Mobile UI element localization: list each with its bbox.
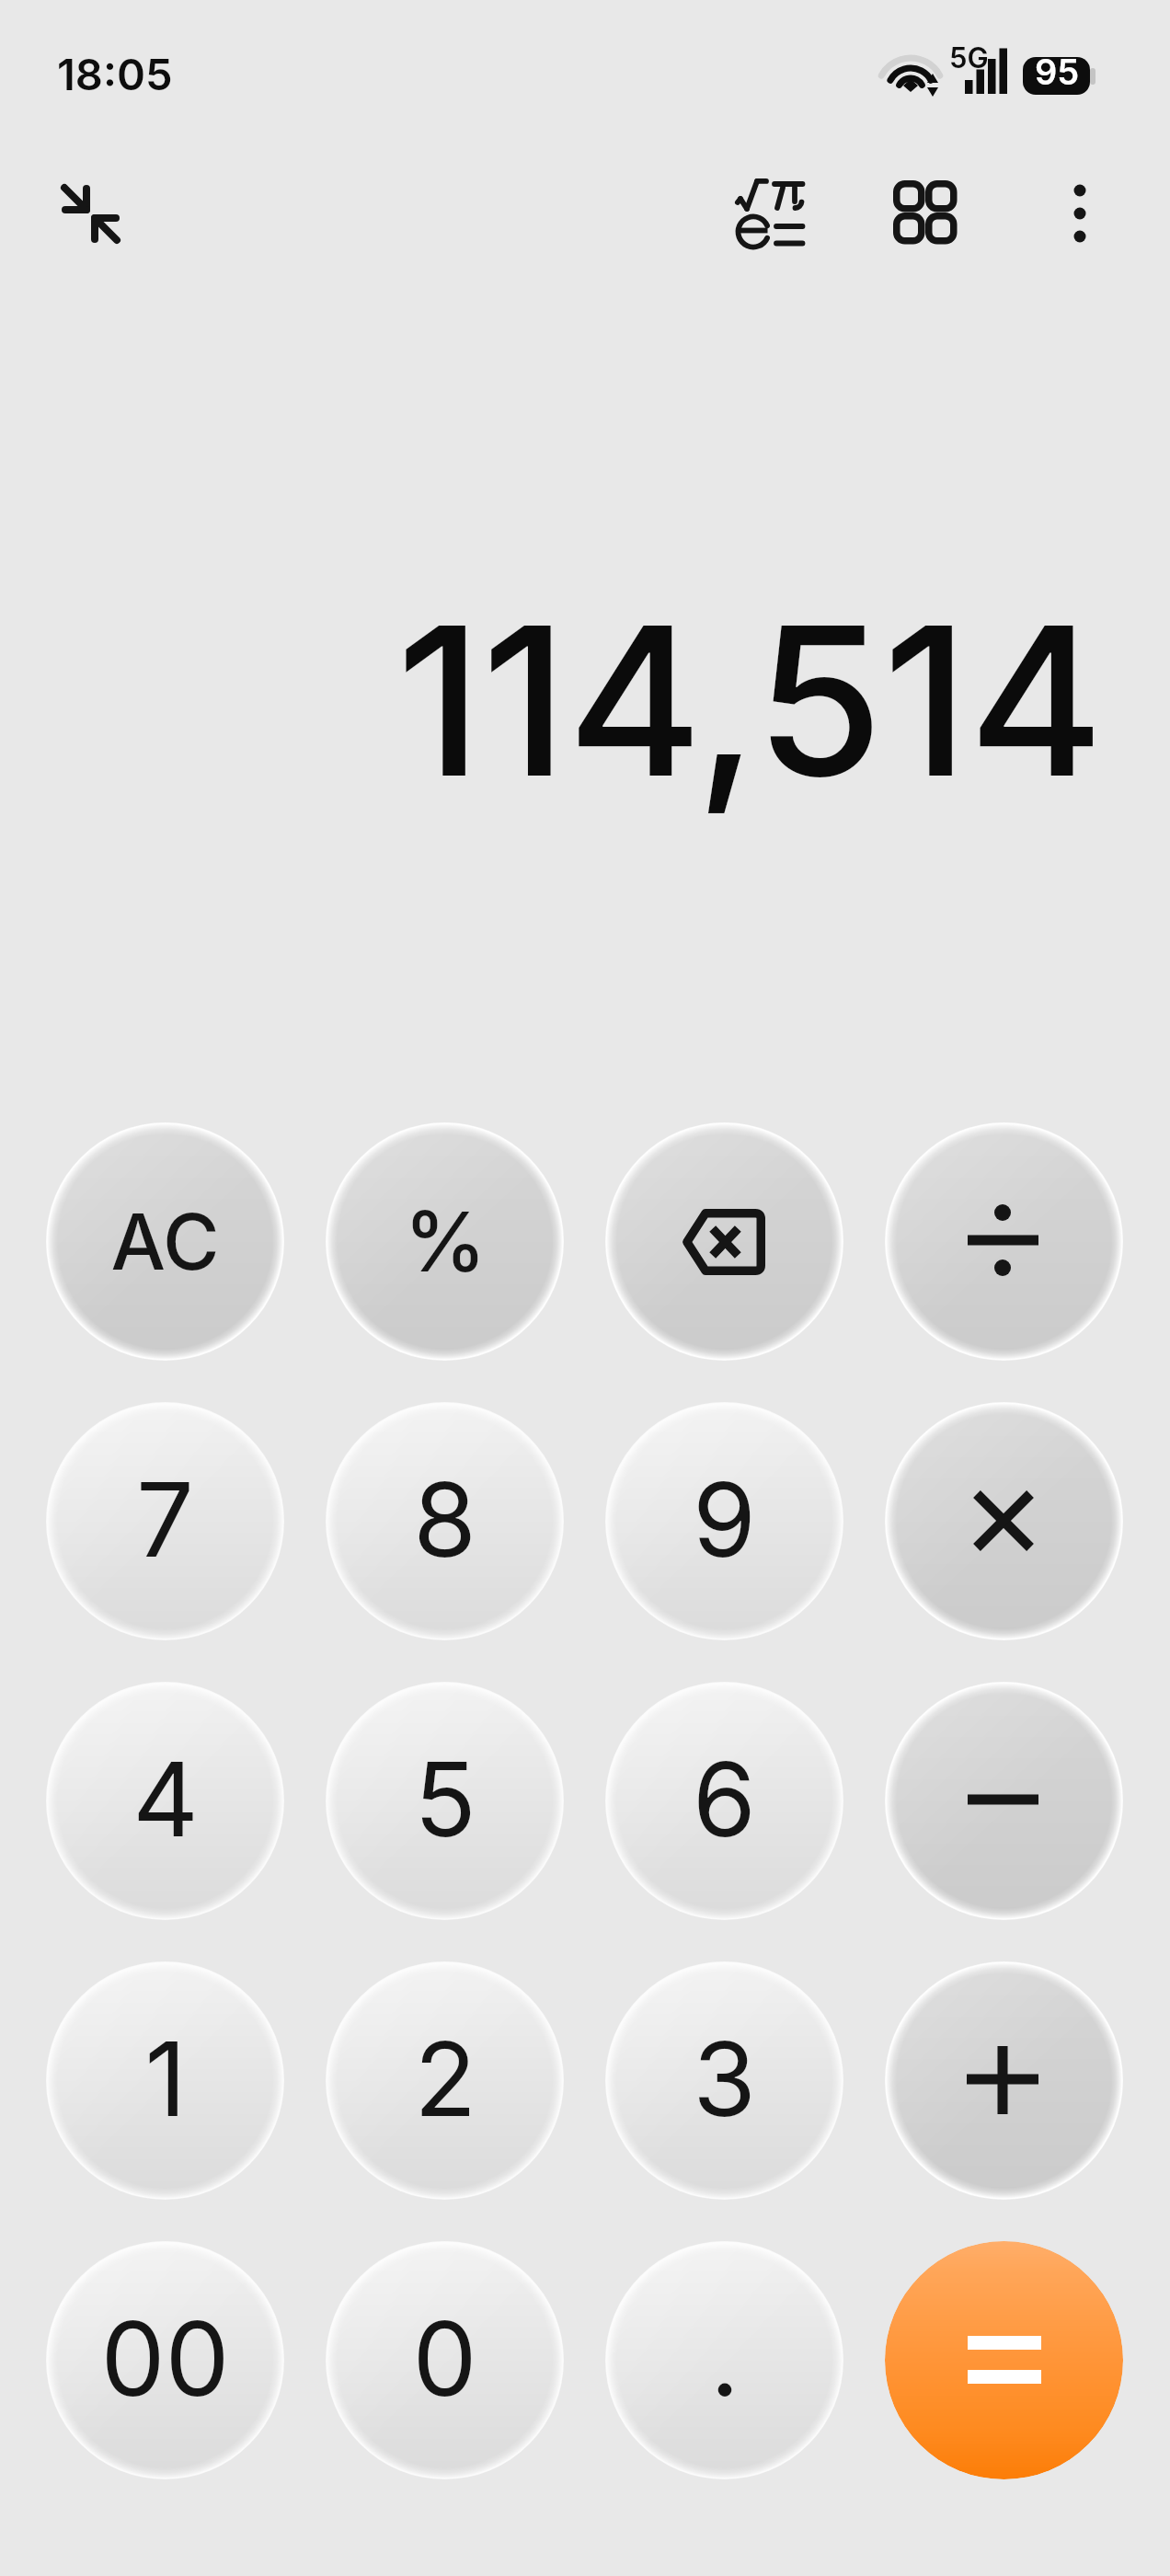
button[interactable]: 3 (605, 1961, 843, 2200)
staticText: . (710, 2296, 740, 2420)
staticText: 00 (100, 2296, 230, 2420)
staticText: 1 (144, 2017, 187, 2140)
button[interactable]: 2 (326, 1961, 564, 2200)
button[interactable]: Divide (885, 1122, 1123, 1361)
staticText: AC (110, 1195, 220, 1289)
button[interactable]: Scientific calculator (699, 143, 842, 285)
staticText: 4 (132, 1737, 199, 1860)
button[interactable]: Multiply (885, 1402, 1123, 1640)
button[interactable]: 8 (326, 1402, 564, 1640)
button[interactable]: 4 (46, 1682, 284, 1920)
staticText: 8 (413, 1457, 476, 1581)
button[interactable]: Delete (605, 1122, 843, 1361)
button[interactable]: 1 (46, 1961, 284, 2200)
button[interactable]: 9 (605, 1402, 843, 1640)
staticText: 3 (693, 2017, 756, 2140)
button[interactable]: 00 (46, 2241, 284, 2479)
staticText: 5 (414, 1737, 476, 1860)
staticText: 0 (412, 2296, 477, 2420)
button[interactable]: Equals (885, 2241, 1123, 2479)
button[interactable]: Exit full screen (39, 162, 142, 265)
button[interactable]: . (605, 2241, 843, 2479)
staticText: 9 (693, 1457, 756, 1581)
staticText: 2 (414, 2017, 476, 2140)
button[interactable]: 5 (326, 1682, 564, 1920)
staticText: 95 (1035, 51, 1080, 93)
button[interactable]: 0 (326, 2241, 564, 2479)
staticText: % (404, 1191, 487, 1292)
button[interactable]: More options (1028, 162, 1131, 265)
staticText: 5G (949, 40, 989, 75)
button[interactable]: Subtract (885, 1682, 1123, 1920)
button[interactable]: % (326, 1122, 564, 1361)
staticText: 114,514 (396, 576, 1104, 825)
staticText: 6 (693, 1737, 756, 1860)
button[interactable]: 7 (46, 1402, 284, 1640)
staticText: 7 (136, 1457, 194, 1581)
button[interactable]: 6 (605, 1682, 843, 1920)
button[interactable]: Unit converter (874, 161, 977, 264)
button[interactable]: Add (885, 1961, 1123, 2200)
button[interactable]: AC (46, 1122, 284, 1361)
staticText: 18:05 (57, 48, 173, 100)
